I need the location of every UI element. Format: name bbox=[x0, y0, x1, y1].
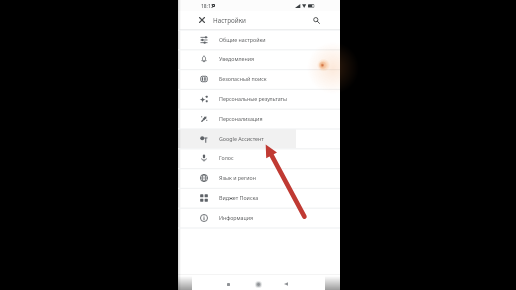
button[interactable]: Голос bbox=[178, 148, 340, 167]
button[interactable]: Персональные результаты bbox=[178, 89, 340, 108]
staticText: Виджет Поиска bbox=[219, 194, 259, 201]
button[interactable]: Персонализация bbox=[178, 109, 340, 128]
button[interactable]: Информация bbox=[178, 208, 340, 227]
staticText: Настройки bbox=[213, 16, 246, 25]
staticText: 18:13 bbox=[201, 3, 214, 10]
button[interactable]: Search bbox=[309, 11, 323, 29]
button[interactable]: Back bbox=[278, 277, 293, 290]
staticText: Язык и регион bbox=[219, 174, 256, 181]
button[interactable]: Recents bbox=[221, 277, 236, 290]
staticText: Google Ассистент bbox=[219, 135, 264, 142]
staticText: Голос bbox=[219, 154, 234, 161]
staticText: Персональные результаты bbox=[219, 95, 288, 102]
button[interactable]: Виджет Поиска bbox=[178, 188, 340, 207]
staticText: Информация bbox=[219, 214, 254, 221]
staticText: Персонализация bbox=[219, 115, 263, 122]
button[interactable]: Close bbox=[195, 11, 209, 29]
button[interactable]: Уведомления bbox=[178, 49, 340, 68]
staticText: Уведомления bbox=[219, 55, 255, 62]
button[interactable]: Язык и регион bbox=[178, 168, 340, 187]
staticText: Общие настройки bbox=[219, 36, 266, 43]
button[interactable]: Безопасный поиск bbox=[178, 69, 340, 88]
staticText: Безопасный поиск bbox=[219, 75, 267, 82]
button[interactable]: Общие настройки bbox=[178, 30, 340, 49]
button[interactable]: Home bbox=[251, 277, 266, 290]
button[interactable]: Google Ассистент bbox=[178, 129, 340, 148]
